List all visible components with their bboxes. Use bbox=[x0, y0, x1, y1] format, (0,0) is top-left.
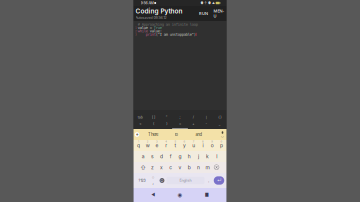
staticText: r bbox=[165, 142, 167, 148]
button[interactable]: Recents bbox=[200, 188, 214, 202]
button[interactable]: [ ] bbox=[147, 114, 160, 121]
button[interactable]: Back bbox=[146, 188, 160, 202]
button[interactable]: Backspace bbox=[212, 162, 221, 173]
button[interactable]: f bbox=[166, 151, 175, 162]
button[interactable]: MENU bbox=[213, 9, 224, 18]
button[interactable]: 8 bbox=[198, 140, 208, 151]
button[interactable]: - bbox=[200, 120, 213, 127]
staticText: RUN bbox=[199, 11, 208, 16]
button[interactable]: tab bbox=[133, 114, 147, 121]
staticText: m bbox=[206, 164, 210, 170]
button[interactable]: ) bbox=[160, 120, 173, 127]
staticText: g bbox=[178, 153, 181, 159]
staticText: { } bbox=[218, 115, 221, 119]
button[interactable]: Home bbox=[173, 188, 187, 202]
button[interactable]: < bbox=[133, 120, 147, 127]
staticText: 3 bbox=[156, 140, 158, 143]
button[interactable]: 1 bbox=[134, 140, 143, 151]
button[interactable]: ?123 bbox=[135, 174, 148, 187]
staticText: while bbox=[138, 29, 148, 33]
staticText bbox=[148, 29, 150, 33]
button[interactable]: Shift bbox=[139, 162, 148, 173]
staticText: 6 bbox=[184, 140, 186, 143]
button[interactable]: ” bbox=[160, 114, 173, 121]
button[interactable]: = bbox=[173, 120, 187, 127]
button[interactable]: s bbox=[148, 151, 157, 162]
staticText: ⓧ bbox=[214, 164, 220, 171]
button[interactable]: c bbox=[166, 162, 175, 173]
button[interactable]: g bbox=[175, 151, 185, 162]
staticText: k bbox=[206, 153, 209, 159]
staticText: [ ] bbox=[152, 115, 155, 119]
staticText: o bbox=[211, 142, 214, 148]
button[interactable]: 3 bbox=[152, 140, 162, 151]
staticText: ↵ bbox=[217, 178, 221, 183]
staticText: ) bbox=[194, 32, 196, 36]
staticText: _ bbox=[219, 122, 221, 126]
button[interactable]: _ bbox=[213, 120, 226, 127]
staticText: ( bbox=[156, 32, 158, 36]
button[interactable]: a bbox=[139, 151, 148, 162]
staticText: q bbox=[137, 142, 140, 148]
staticText: "I am unstoppable" bbox=[158, 32, 194, 36]
staticText: ● bbox=[136, 133, 138, 136]
staticText: ∣ bbox=[206, 115, 208, 119]
button[interactable]: + bbox=[187, 120, 200, 127]
button[interactable]: 2 bbox=[143, 140, 152, 151]
button[interactable]: English bbox=[166, 174, 204, 187]
button[interactable]: { } bbox=[213, 114, 226, 121]
staticText: Autosaved 09:56:12 bbox=[135, 15, 166, 20]
staticText: f bbox=[170, 153, 172, 159]
staticText: 2 bbox=[135, 29, 137, 33]
button[interactable]: b bbox=[185, 162, 194, 173]
button[interactable]: ; bbox=[173, 114, 187, 121]
staticText: = bbox=[148, 25, 154, 30]
button[interactable]: v bbox=[175, 162, 185, 173]
button[interactable]: RUN bbox=[198, 9, 208, 18]
button[interactable]: There bbox=[141, 129, 164, 140]
staticText: ● bbox=[208, 1, 211, 5]
staticText: ⇧ bbox=[140, 164, 146, 171]
button[interactable]: / bbox=[187, 114, 200, 121]
staticText: ○ bbox=[152, 176, 154, 179]
button[interactable]: to bbox=[164, 129, 187, 140]
button[interactable]: ∣ bbox=[200, 114, 213, 121]
staticText: ◀ bbox=[151, 192, 155, 198]
button[interactable]: Clipboard bbox=[132, 129, 141, 140]
button[interactable]: j bbox=[194, 151, 203, 162]
button[interactable]: z bbox=[148, 162, 157, 173]
button[interactable]: and bbox=[187, 129, 210, 140]
button[interactable]: 4 bbox=[162, 140, 171, 151]
button[interactable]: Enter bbox=[212, 174, 225, 187]
button[interactable]: 7 bbox=[189, 140, 198, 151]
button[interactable]: d bbox=[157, 151, 166, 162]
button[interactable]: 0 bbox=[217, 140, 226, 151]
button[interactable]: 6 bbox=[180, 140, 189, 151]
staticText: w bbox=[146, 142, 150, 148]
staticText: English bbox=[179, 178, 191, 183]
button[interactable]: Comma bbox=[148, 174, 157, 187]
staticText: ?123 bbox=[138, 178, 145, 183]
staticText: p bbox=[220, 142, 223, 148]
staticText: l bbox=[216, 153, 217, 159]
staticText: ☺ bbox=[160, 178, 164, 182]
button[interactable]: Emoji bbox=[157, 174, 166, 187]
button[interactable]: 9 bbox=[208, 140, 217, 151]
button[interactable]: ( bbox=[147, 120, 160, 127]
button[interactable]: l bbox=[212, 151, 221, 162]
button[interactable]: m bbox=[203, 162, 212, 173]
button[interactable]: x bbox=[157, 162, 166, 173]
button[interactable]: n bbox=[194, 162, 203, 173]
staticText: b bbox=[188, 164, 191, 170]
button[interactable]: h bbox=[185, 151, 194, 162]
staticText: 3 bbox=[135, 33, 137, 36]
staticText: 7 bbox=[193, 140, 195, 143]
staticText: u bbox=[192, 142, 195, 148]
button[interactable]: Voice input bbox=[218, 129, 226, 140]
staticText: : bbox=[160, 29, 162, 33]
button[interactable]: k bbox=[203, 151, 212, 162]
button[interactable]: 5 bbox=[171, 140, 180, 151]
staticText: value bbox=[150, 29, 160, 33]
staticText: ” bbox=[166, 115, 168, 119]
